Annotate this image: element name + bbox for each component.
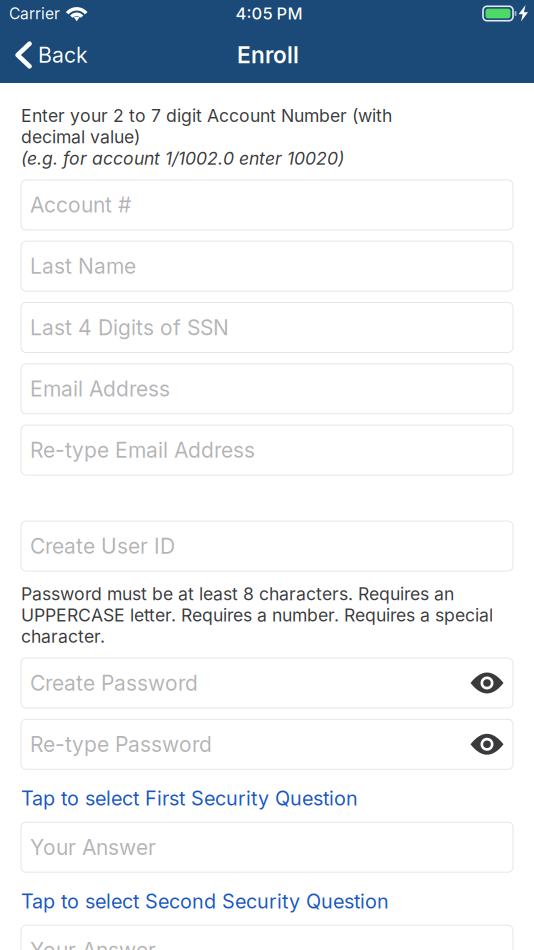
staticText: Last Name xyxy=(30,253,136,279)
staticText: Tap to select Second Security Question xyxy=(21,889,389,913)
staticText: Your Answer xyxy=(30,937,156,950)
staticText: Enter your 2 to 7 digit Account Number (… xyxy=(21,105,392,126)
staticText: Account # xyxy=(30,192,131,218)
staticText: 4:05 PM xyxy=(235,3,302,23)
button[interactable]: Show password xyxy=(461,719,513,769)
button[interactable]: Tap to select First Security Question xyxy=(21,781,513,815)
staticText: Create User ID xyxy=(30,533,175,559)
staticText: Re-type Email Address xyxy=(30,437,255,463)
staticText: Password must be at least 8 characters. … xyxy=(21,583,493,647)
staticText: Create Password xyxy=(30,670,198,696)
staticText: Tap to select First Security Question xyxy=(21,786,358,810)
staticText: Back xyxy=(38,42,88,68)
staticText: Carrier xyxy=(9,4,60,23)
staticText: Your Answer xyxy=(30,834,156,860)
button[interactable]: Tap to select Second Security Question xyxy=(21,884,513,918)
staticText: (e.g. for account 1/1002.0 enter 10020) xyxy=(21,148,344,169)
button[interactable]: Back xyxy=(0,27,100,82)
staticText: Re-type Password xyxy=(30,731,212,757)
staticText: Last 4 Digits of SSN xyxy=(30,315,229,340)
staticText: Email Address xyxy=(30,376,170,401)
staticText: decimal value) xyxy=(21,126,140,148)
button[interactable]: Show password xyxy=(461,658,513,708)
staticText: Enroll xyxy=(237,41,299,69)
